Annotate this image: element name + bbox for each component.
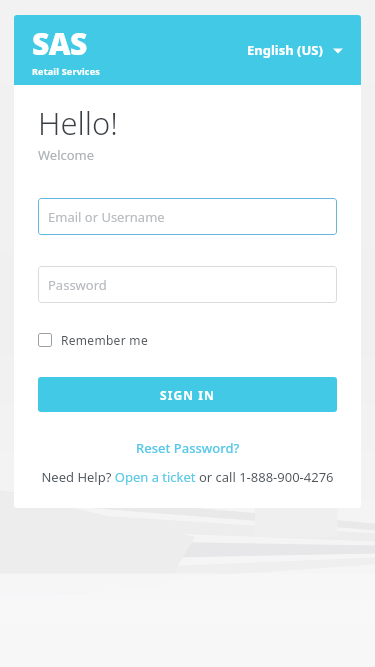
- button[interactable]: Need Help? Open a ticket or call 1-888-9…: [38, 468, 337, 486]
- other: Change language: [333, 47, 343, 54]
- button[interactable]: Reset Password?: [130, 437, 246, 459]
- staticText: Remember me: [61, 332, 148, 348]
- button[interactable]: Remember me: [38, 330, 148, 350]
- staticText: Password: [48, 276, 107, 294]
- staticText: Welcome: [38, 146, 95, 164]
- button[interactable]: SIGN IN: [38, 377, 337, 412]
- button[interactable]: Email or Username: [38, 198, 337, 235]
- staticText: Hello!: [38, 102, 118, 144]
- staticText: Reset Password?: [136, 439, 240, 457]
- staticText: SIGN IN: [160, 387, 215, 403]
- button[interactable]: English (US): [243, 35, 347, 65]
- staticText: Email or Username: [48, 208, 165, 226]
- staticText: Need Help? Open a ticket or call 1-888-9…: [41, 468, 334, 486]
- staticText: English (US): [247, 41, 323, 59]
- button[interactable]: Password: [38, 266, 337, 303]
- staticText: SAS: [32, 23, 87, 64]
- staticText: Retail Services: [32, 65, 101, 77]
